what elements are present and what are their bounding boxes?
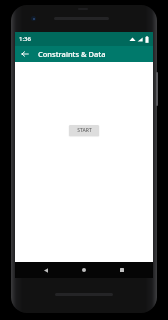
button[interactable]: Home [77,263,91,277]
button[interactable]: Back [18,47,32,61]
staticText: Constraints & Data [38,49,106,59]
button[interactable]: START [69,125,99,136]
staticText: 1:36 [19,35,31,43]
button[interactable]: Recent apps [115,263,129,277]
staticText: START [77,127,92,134]
button[interactable]: Back [39,263,53,277]
